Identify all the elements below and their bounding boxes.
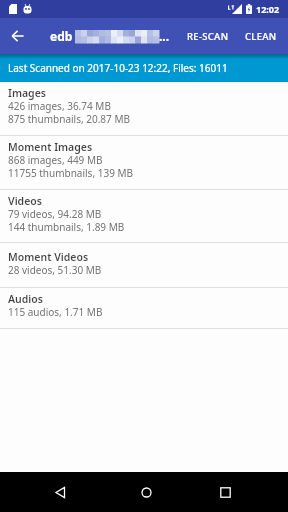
staticText: ... [159, 28, 170, 44]
button[interactable]: Audios [0, 288, 288, 328]
staticText: Videos [8, 195, 42, 208]
button[interactable]: RE-SCAN [183, 18, 233, 54]
staticText: 79 videos, 94.28 MB [8, 208, 102, 221]
button[interactable]: Moment Videos [0, 243, 288, 287]
button[interactable]: CLEAN [241, 18, 281, 54]
button[interactable] [48, 480, 72, 504]
staticText: Images [8, 87, 46, 100]
staticText: 11755 thumbnails, 139 MB [8, 167, 134, 180]
staticText: Last Scanned on 2017-10-23 12:22, Files:… [8, 61, 228, 75]
staticText: 144 thumbnails, 1.89 MB [8, 221, 125, 234]
staticText: RE-SCAN [187, 30, 229, 43]
staticText: Moment Videos [8, 251, 89, 264]
staticText: 868 images, 449 MB [8, 154, 103, 167]
button[interactable]: Videos [0, 190, 288, 242]
button[interactable] [0, 18, 36, 54]
button[interactable]: Moment Images [0, 136, 288, 189]
staticText: edb [50, 28, 73, 44]
staticText: CLEAN [245, 30, 277, 43]
button[interactable]: Images [0, 82, 288, 135]
staticText: Moment Images [8, 141, 93, 154]
staticText: 426 images, 36.74 MB [8, 100, 111, 113]
staticText: Audios [8, 293, 43, 306]
staticText: 28 videos, 51.30 MB [8, 264, 102, 277]
button[interactable] [134, 480, 158, 504]
staticText: 875 thumbnails, 20.87 MB [8, 113, 130, 126]
button[interactable] [213, 480, 237, 504]
staticText: 115 audios, 1.71 MB [8, 306, 103, 319]
staticText: 12:02 [256, 3, 280, 15]
